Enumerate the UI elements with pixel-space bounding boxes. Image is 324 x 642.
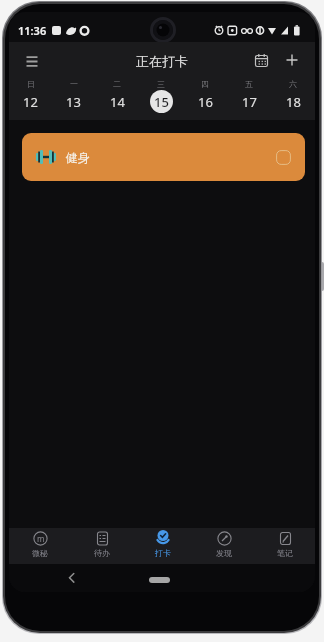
staticText: 一	[70, 79, 78, 89]
staticText: 18	[286, 93, 301, 111]
staticText: 11:36	[18, 23, 47, 38]
button[interactable]: 健身	[22, 133, 305, 181]
staticText: 五	[245, 79, 253, 89]
button[interactable]	[149, 577, 170, 583]
staticText: 待办	[94, 548, 110, 558]
staticText: 打卡	[155, 548, 171, 558]
button[interactable]: 待办	[71, 528, 132, 564]
button[interactable]: 发现	[193, 528, 254, 564]
button[interactable]	[286, 54, 298, 66]
button[interactable]: 一	[52, 78, 95, 120]
staticText: m	[37, 533, 45, 544]
staticText: 微秘	[32, 548, 48, 558]
staticText: 三	[157, 79, 165, 89]
button[interactable]	[276, 150, 291, 165]
staticText: 日	[27, 79, 35, 89]
staticText: 发现	[216, 548, 232, 558]
staticText: 健身	[66, 150, 90, 165]
button[interactable]: 日	[9, 78, 52, 120]
staticText: 六	[289, 79, 297, 89]
button[interactable]: 打卡	[132, 528, 193, 564]
staticText: 正在打卡	[136, 53, 188, 69]
button[interactable]	[67, 573, 77, 583]
button[interactable]: 五	[227, 78, 271, 120]
staticText: 14	[110, 93, 125, 111]
staticText: 笔记	[277, 548, 293, 558]
button[interactable]: 四	[183, 78, 227, 120]
staticText: 二	[113, 79, 121, 89]
button[interactable]: m	[9, 528, 71, 564]
staticText: 12	[23, 93, 38, 111]
staticText: 15	[154, 93, 169, 111]
staticText: 17	[242, 93, 257, 111]
button[interactable]	[26, 56, 38, 67]
button[interactable]: 六	[271, 78, 315, 120]
button[interactable]	[255, 54, 268, 67]
button[interactable]: 二	[95, 78, 139, 120]
staticText: 四	[201, 79, 209, 89]
staticText: 13	[66, 93, 81, 111]
button[interactable]: 三	[139, 78, 183, 120]
staticText: 16	[198, 93, 213, 111]
button[interactable]: 笔记	[254, 528, 315, 564]
